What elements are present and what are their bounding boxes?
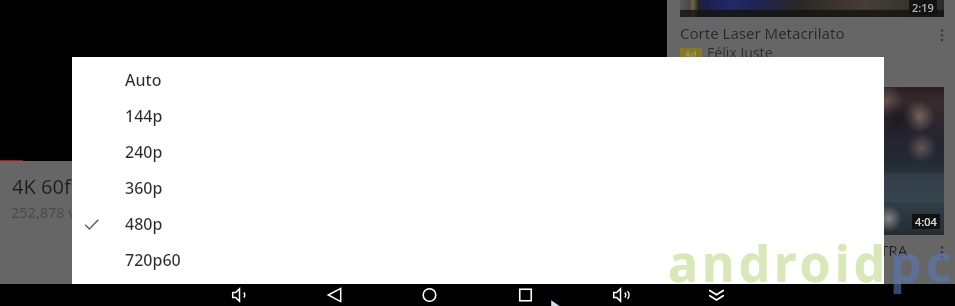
- staticText: 4:04: [915, 214, 937, 229]
- button[interactable]: 720p60: [72, 242, 884, 278]
- button[interactable]: 144p: [72, 98, 884, 134]
- staticText: 480p: [125, 213, 163, 235]
- staticText: Corte Laser Metacrilato: [680, 23, 845, 43]
- button[interactable]: Auto: [72, 62, 884, 98]
- button[interactable]: More options: [935, 246, 949, 260]
- staticText: 360p: [125, 177, 163, 199]
- staticText: Ad: [685, 48, 697, 58]
- staticText: pc: [890, 229, 955, 297]
- staticText: 252,878 views: [11, 202, 106, 222]
- button[interactable]: Volume up: [608, 284, 633, 306]
- button[interactable]: 240p: [72, 134, 884, 170]
- staticText: 2:19: [912, 0, 934, 15]
- button[interactable]: Volume down: [227, 284, 252, 306]
- button[interactable]: Collapse: [704, 284, 729, 306]
- button[interactable]: More options: [935, 29, 949, 43]
- staticText: TRA: [880, 240, 908, 260]
- staticText: android: [668, 229, 890, 297]
- staticText: 4K 60fps: [12, 173, 93, 200]
- staticText: 720p60: [125, 249, 181, 271]
- button[interactable]: 480p: [72, 206, 884, 242]
- staticText: 240p: [125, 141, 163, 163]
- staticText: 144p: [125, 105, 163, 127]
- staticText: Félix Juste: [707, 43, 773, 62]
- staticText: Auto: [125, 69, 162, 91]
- button[interactable]: Back: [322, 284, 347, 306]
- button[interactable]: 360p: [72, 170, 884, 206]
- button[interactable]: Home: [417, 284, 442, 306]
- button[interactable]: Recents: [513, 284, 538, 306]
